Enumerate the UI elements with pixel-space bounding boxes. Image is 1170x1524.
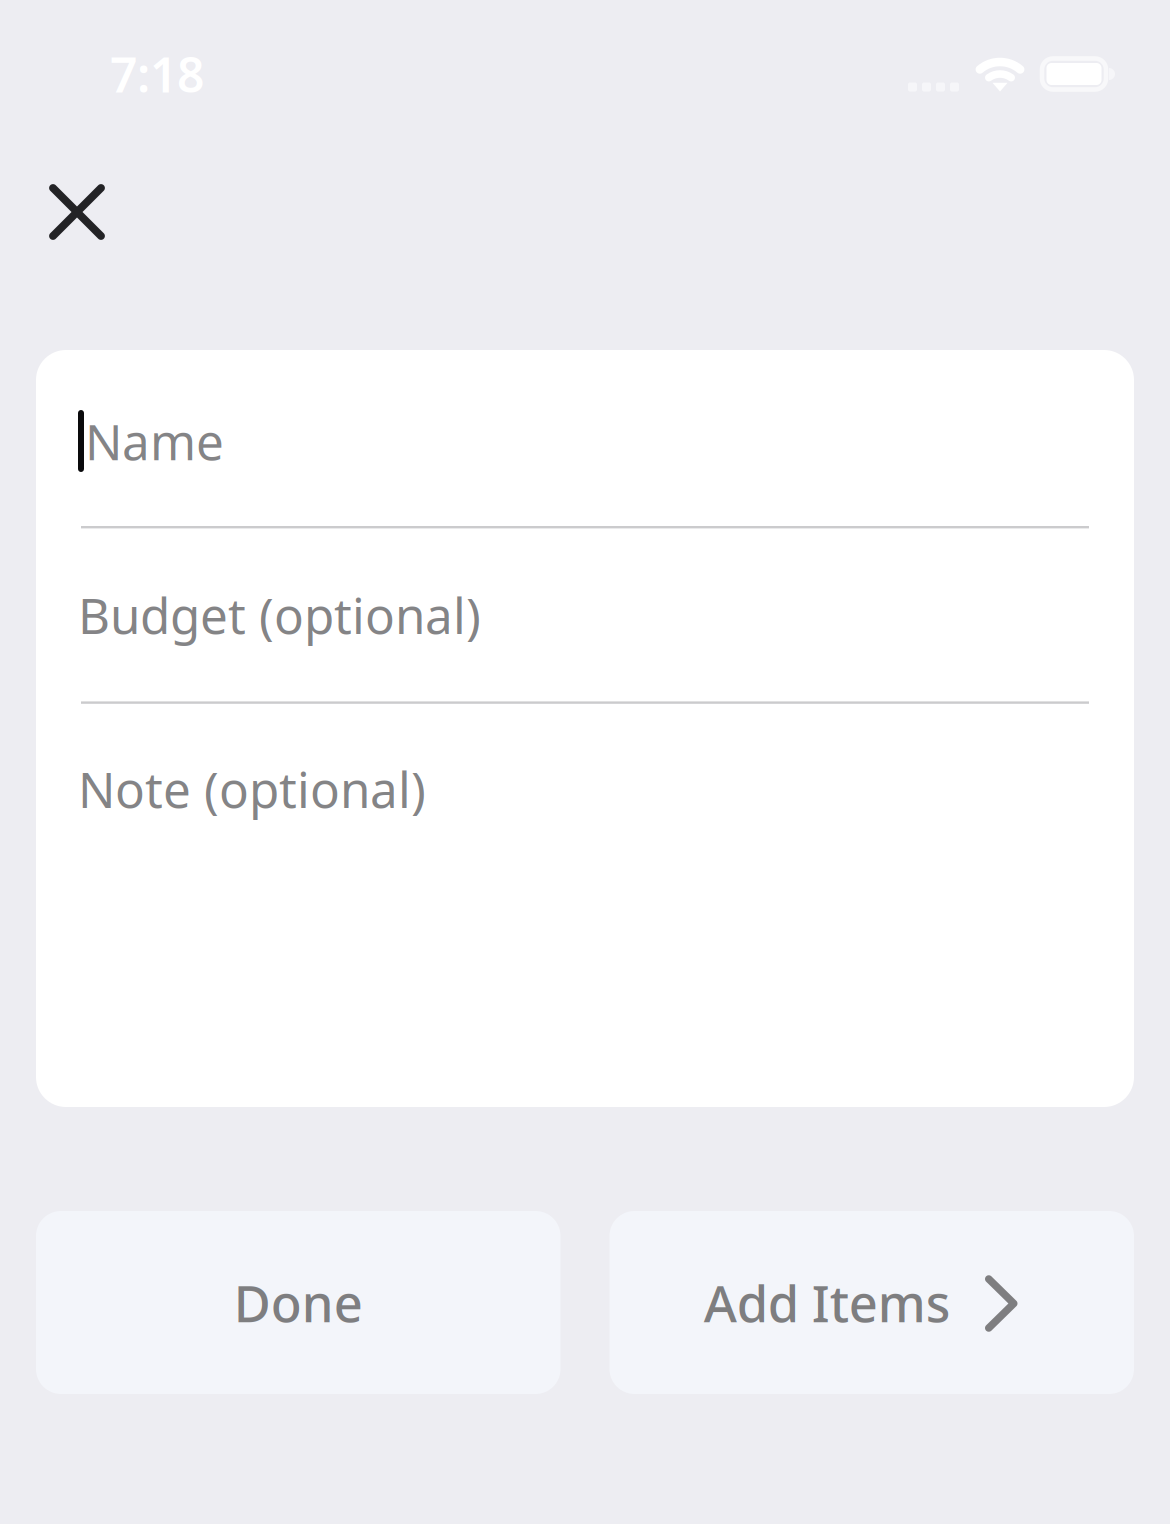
staticText: Add Items	[704, 1269, 951, 1336]
staticText: Name	[85, 408, 224, 474]
staticText: Note (optional)	[78, 756, 426, 821]
staticText: Budget (optional)	[78, 582, 481, 648]
button[interactable]: Close	[21, 155, 131, 265]
button[interactable]: Done	[36, 1211, 560, 1394]
staticText: Done	[234, 1269, 363, 1336]
staticText: 7:18	[110, 42, 204, 106]
button[interactable]: Add Items	[609, 1211, 1134, 1394]
